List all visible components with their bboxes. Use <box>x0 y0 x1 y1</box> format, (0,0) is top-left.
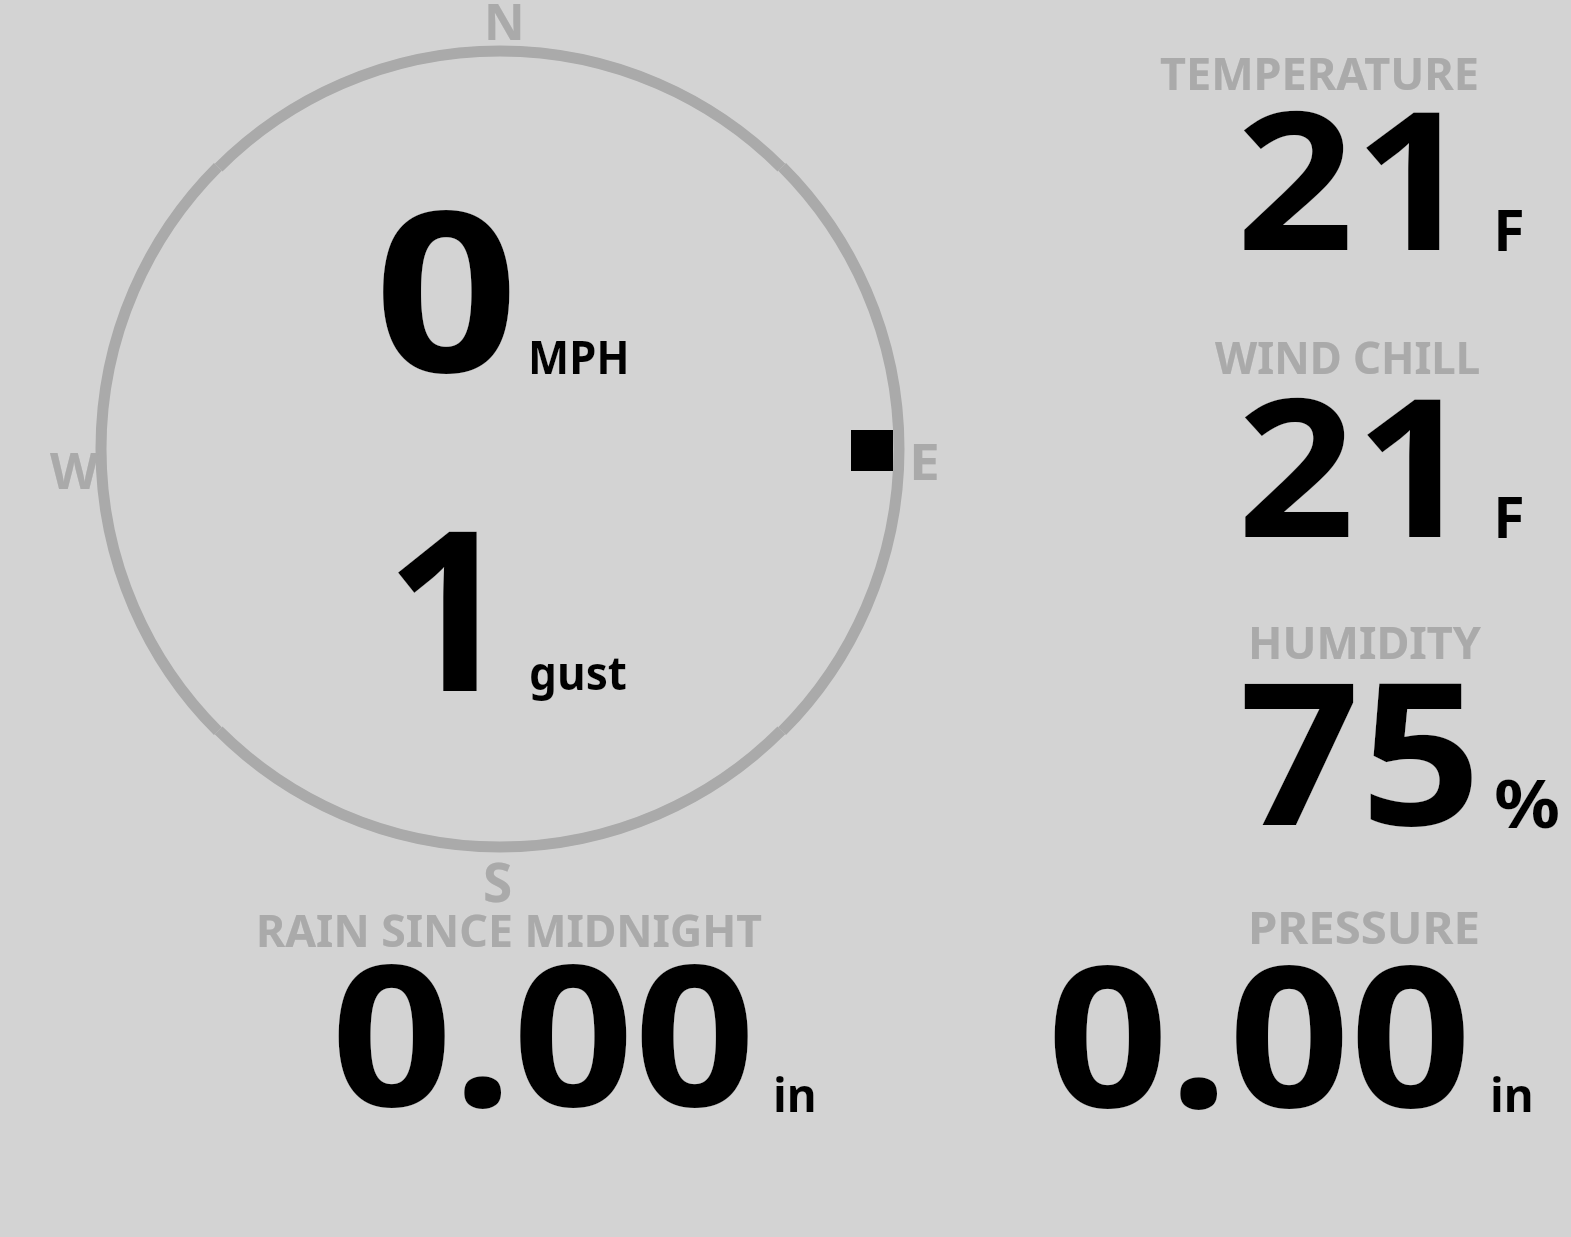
staticText: 0.00 <box>1047 897 1472 1164</box>
staticText: S <box>483 845 513 917</box>
staticText: F <box>1493 476 1525 555</box>
staticText: gust <box>529 640 628 704</box>
staticText: 21 <box>1236 44 1472 307</box>
staticText: TEMPERATURE <box>1160 42 1479 103</box>
button[interactable]: Wind direction compass, wind from the ea… <box>95 44 905 854</box>
staticText: MPH <box>528 324 630 388</box>
button[interactable]: Wind gust 1 MPH <box>380 525 640 705</box>
staticText: 0 <box>374 135 519 437</box>
button[interactable]: Wind chill 21 degrees F <box>1150 326 1550 546</box>
button[interactable]: Rain since midnight 0.00 inches <box>250 896 820 1121</box>
staticText: HUMIDITY <box>1248 611 1481 672</box>
staticText: WIND CHILL <box>1215 326 1481 387</box>
button[interactable]: Humidity 75 percent <box>1150 611 1550 836</box>
staticText: in <box>773 1063 817 1126</box>
staticText: 21 <box>1237 331 1473 594</box>
staticText: 0.00 <box>331 896 756 1163</box>
staticText: in <box>1490 1063 1534 1126</box>
staticText: RAIN SINCE MIDNIGHT <box>256 899 763 960</box>
staticText: PRESSURE <box>1248 896 1480 957</box>
staticText: E <box>909 427 940 495</box>
staticText: % <box>1494 757 1561 847</box>
button[interactable]: Temperature 21 degrees F <box>1150 40 1550 260</box>
staticText: F <box>1493 189 1525 268</box>
staticText: 1 <box>385 454 512 756</box>
button[interactable]: Wind speed 0 MPH <box>360 200 650 385</box>
staticText: N <box>484 0 525 55</box>
staticText: 75 <box>1239 614 1482 882</box>
button[interactable]: Pressure 0.00 inches <box>1020 896 1560 1121</box>
staticText: W <box>50 436 99 504</box>
